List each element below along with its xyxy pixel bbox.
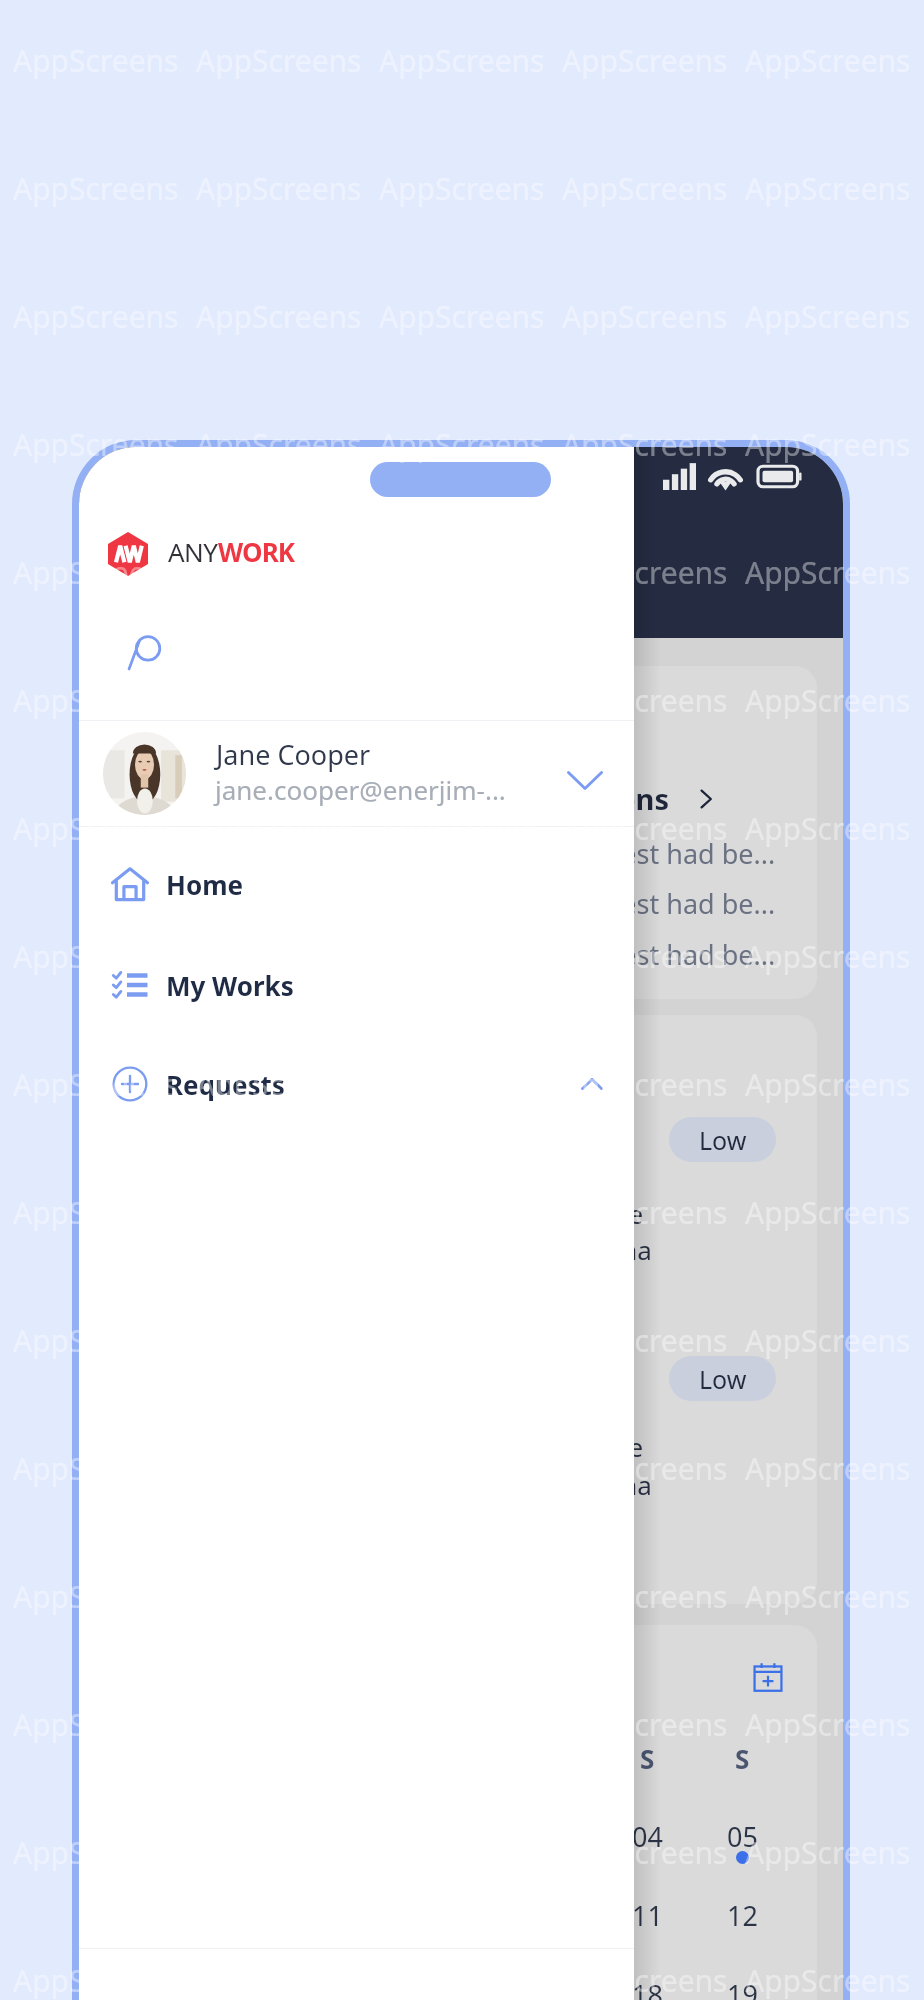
- staticText: AppScreens: [745, 296, 911, 337]
- staticText: AppScreens: [13, 40, 179, 81]
- button[interactable]: Search: [79, 612, 634, 696]
- button[interactable]: Add event: [744, 1653, 792, 1701]
- staticText: AppScreens: [562, 1704, 728, 1745]
- staticText: AppScreens: [562, 552, 728, 593]
- staticText: Due date: [532, 1196, 644, 1231]
- button[interactable]: Jane Cooper: [79, 720, 634, 826]
- staticText: 12: [727, 1897, 758, 1933]
- staticText: AppScreens: [13, 1064, 179, 1105]
- staticText: 19: [727, 1976, 758, 2000]
- button[interactable]: 18: [622, 1976, 672, 2000]
- staticText: Jane Cooper: [216, 736, 371, 773]
- staticText: 24 Jana: [563, 1232, 652, 1267]
- staticText: AppScreens: [13, 1960, 179, 2000]
- staticText: AppScreens: [562, 1832, 728, 1873]
- staticText: AppScreens: [13, 808, 179, 849]
- staticText: AppScreens: [196, 552, 362, 593]
- staticText: AppScreens: [196, 1064, 362, 1105]
- staticText: AppScreens: [745, 552, 911, 593]
- staticText: AppScreens: [745, 1576, 911, 1617]
- staticText: AppScreens: [562, 1064, 728, 1105]
- staticText: AppScreens: [13, 296, 179, 337]
- staticText: AppScreens: [745, 680, 911, 721]
- staticText: AppScreens: [562, 1192, 728, 1233]
- staticText: AppScreens: [196, 296, 362, 337]
- staticText: AppScreens: [13, 1832, 179, 1873]
- staticText: AppScreens: [562, 40, 728, 81]
- staticText: AppScreens: [745, 424, 911, 465]
- staticText: 11: [632, 1897, 663, 1933]
- staticText: AppScreens: [13, 1192, 179, 1233]
- staticText: AppScreens: [562, 936, 728, 977]
- staticText: AppScreens: [13, 1448, 179, 1489]
- staticText: AppScreens: [745, 936, 911, 977]
- staticText: 24 Jana: [563, 1467, 652, 1502]
- staticText: AppScreens: [13, 552, 179, 593]
- staticText: Request had be...: [556, 936, 776, 973]
- button[interactable]: 11: [622, 1897, 672, 1933]
- staticText: Due date: [532, 1429, 644, 1464]
- staticText: AppScreens: [13, 1704, 179, 1745]
- button[interactable]: Low: [669, 1356, 776, 1401]
- button[interactable]: 04: [622, 1818, 672, 1854]
- staticText: AppScreens: [562, 1320, 728, 1361]
- button[interactable]: Notifications: [481, 779, 717, 818]
- staticText: Home: [166, 867, 244, 902]
- staticText: AppScreens: [13, 936, 179, 977]
- staticText: AppScreens: [13, 424, 179, 465]
- button[interactable]: Home: [79, 834, 634, 934]
- staticText: AppScreens: [13, 168, 179, 209]
- staticText: AppScreens: [196, 168, 362, 209]
- staticText: AppScreens: [745, 40, 911, 81]
- staticText: AppScreens: [562, 808, 728, 849]
- staticText: AppScreens: [562, 168, 728, 209]
- button[interactable]: 05: [717, 1818, 767, 1854]
- staticText: AppScreens: [562, 296, 728, 337]
- button[interactable]: 12: [717, 1897, 767, 1933]
- staticText: AppScreens: [196, 40, 362, 81]
- button[interactable]: Requests: [79, 1034, 634, 1134]
- staticText: Notifications: [481, 779, 669, 818]
- staticText: AppScreens: [745, 1832, 911, 1873]
- button[interactable]: Low: [669, 1117, 776, 1162]
- staticText: AppScreens: [745, 1448, 911, 1489]
- staticText: AppScreens: [562, 1576, 728, 1617]
- staticText: AppScreens: [745, 168, 911, 209]
- button[interactable]: 19: [717, 1976, 767, 2000]
- button[interactable]: My Works: [79, 935, 634, 1035]
